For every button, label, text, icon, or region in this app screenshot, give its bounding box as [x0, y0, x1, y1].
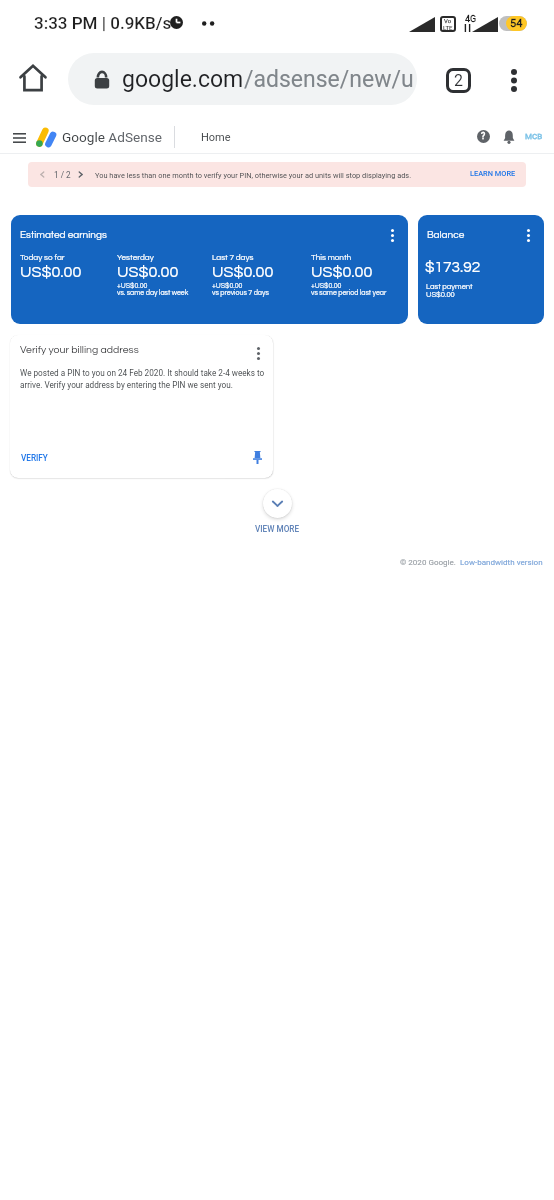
staticText: This month — [311, 253, 352, 261]
staticText: US$0.00 — [311, 264, 373, 281]
staticText: /adsense/new/u — [244, 66, 414, 93]
button[interactable]: Next notification — [71, 165, 90, 184]
staticText: 1 / 2 — [54, 170, 71, 180]
staticText: ? — [481, 131, 486, 142]
staticText: LEARN MORE — [470, 169, 516, 178]
button[interactable]: Help — [472, 125, 495, 148]
button[interactable]: Home — [16, 61, 50, 95]
staticText: VERIFY — [21, 453, 48, 463]
staticText: US$0.00 — [426, 291, 455, 299]
staticText: vs. same day last week — [117, 289, 189, 296]
staticText: Today so far — [20, 253, 65, 261]
staticText: MCB — [525, 132, 543, 141]
staticText: We posted a PIN to you on 24 Feb 2020. I… — [20, 368, 268, 390]
staticText: Home — [201, 131, 231, 144]
staticText: Google — [62, 129, 105, 145]
staticText: LTE — [443, 24, 453, 31]
staticText: $173.92 — [425, 259, 481, 275]
staticText: US$0.00 — [20, 264, 82, 281]
staticText: Vo — [444, 17, 452, 24]
staticText: 3:33 PM | 0.9KB/s — [34, 13, 172, 33]
button[interactable]: google.com — [68, 53, 417, 105]
button[interactable]: Home — [201, 131, 231, 144]
button[interactable]: Previous notification — [33, 165, 52, 184]
staticText: AdSense — [105, 129, 162, 145]
staticText: US$0.00 — [212, 264, 274, 281]
button[interactable]: View more — [263, 489, 292, 518]
button[interactable]: Estimated earnings — [11, 215, 408, 324]
staticText: +US$0.00 — [117, 282, 148, 289]
button[interactable]: VIEW MORE — [255, 524, 300, 534]
staticText: 4G — [465, 14, 477, 25]
button[interactable]: VERIFY — [18, 450, 51, 466]
button[interactable]: Notifications — [497, 125, 520, 148]
staticText: Last 7 days — [212, 253, 254, 261]
button[interactable]: Tabs — [440, 62, 476, 98]
button[interactable]: Pin card — [247, 447, 267, 467]
staticText: Estimated earnings — [20, 230, 107, 240]
staticText: US$0.00 — [117, 264, 179, 281]
staticText: google.com — [122, 66, 244, 93]
button[interactable]: Card options — [248, 343, 268, 363]
button[interactable]: Account — [523, 126, 544, 147]
staticText: +US$0.00 — [212, 282, 243, 289]
button[interactable]: Verify your billing address — [10, 335, 273, 478]
button[interactable]: Menu — [7, 126, 31, 150]
staticText: 54 — [510, 17, 523, 30]
staticText: You have less than one month to verify y… — [95, 171, 412, 180]
staticText: Verify your billing address — [20, 344, 139, 355]
staticText: vs same period last year — [311, 289, 387, 296]
staticText: vs previous 7 days — [212, 289, 269, 296]
staticText: © 2020 Google. — [400, 558, 456, 567]
staticText: Yesterday — [117, 253, 154, 261]
staticText: Low-bandwidth version — [460, 558, 543, 567]
button[interactable]: Balance options — [518, 225, 538, 245]
staticText: 2 — [454, 71, 463, 90]
button[interactable]: More options — [496, 62, 532, 98]
staticText: Balance — [427, 230, 465, 240]
button[interactable]: Balance — [418, 215, 544, 324]
button[interactable]: Low-bandwidth version — [460, 558, 543, 567]
staticText: +US$0.00 — [311, 282, 342, 289]
staticText: VIEW MORE — [255, 524, 300, 534]
button[interactable]: LEARN MORE — [467, 167, 519, 180]
button[interactable]: Estimated earnings options — [382, 225, 402, 245]
staticText: Last payment — [426, 283, 473, 291]
